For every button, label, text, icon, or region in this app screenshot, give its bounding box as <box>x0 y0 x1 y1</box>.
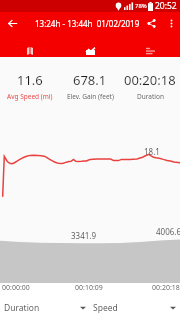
button[interactable]: Splits <box>120 44 180 57</box>
staticText: 13:24h - 13:44h 01/02/2019 <box>35 18 140 29</box>
staticText: Elev. Gain (feet) <box>67 92 114 101</box>
staticText: 00:00:00 <box>2 283 30 293</box>
staticText: 18.1 <box>144 146 160 157</box>
button[interactable]: Speed <box>90 295 180 320</box>
staticText: 00:20:18 <box>124 71 176 89</box>
staticText: 678.1 <box>73 71 107 89</box>
staticText: 20:52 <box>155 0 177 12</box>
button[interactable]: Map <box>0 44 60 57</box>
staticText: Duration <box>4 302 40 314</box>
button[interactable]: 00:20:18 <box>120 57 180 107</box>
staticText: 11.6 <box>17 71 43 89</box>
staticText: 3341.9 <box>71 230 97 241</box>
staticText: 00:20:18 <box>152 283 180 293</box>
staticText: 00:10:09 <box>75 283 103 293</box>
staticText: Avg Speed (mi) <box>7 92 53 101</box>
staticText: 78% <box>135 2 147 10</box>
button[interactable]: Share <box>140 12 162 34</box>
button[interactable]: Back <box>0 12 24 34</box>
button[interactable]: More options <box>162 12 180 34</box>
staticText: 4006.6 <box>156 226 180 237</box>
button[interactable]: 678.1 <box>60 57 120 107</box>
button[interactable]: Charts <box>60 44 120 57</box>
button[interactable]: 11.6 <box>0 57 60 107</box>
button[interactable]: Duration <box>0 295 90 320</box>
staticText: Speed <box>93 302 118 314</box>
staticText: Duration <box>137 92 164 101</box>
